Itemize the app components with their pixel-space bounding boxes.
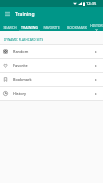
staticText: Favorite (13, 63, 28, 68)
button[interactable]: Bookmark (0, 73, 103, 87)
staticText: Bookmark (13, 77, 32, 82)
button[interactable]: TRAINING (19, 21, 40, 31)
staticText: Training (15, 11, 35, 18)
button[interactable]: FAVORITE (40, 21, 63, 31)
staticText: DYNAMIC FLASHCARD SETS (4, 38, 44, 42)
staticText: HISTORY (90, 23, 103, 31)
button[interactable]: History (0, 87, 103, 101)
staticText: FAVORITE (43, 25, 60, 30)
button[interactable]: BOOKMARK (63, 21, 90, 31)
button[interactable]: Open navigation drawer (0, 7, 15, 21)
button[interactable]: SEARCH (0, 21, 19, 31)
staticText: TRAINING (21, 25, 38, 30)
button[interactable]: HISTORY (90, 21, 103, 31)
staticText: BOOKMARK (67, 25, 87, 30)
staticText: Random (13, 49, 29, 54)
button[interactable]: Random (0, 45, 103, 59)
staticText: 12:35 (86, 1, 97, 6)
button[interactable]: Favorite (0, 59, 103, 73)
staticText: SEARCH (3, 25, 17, 30)
staticText: History (13, 91, 27, 96)
